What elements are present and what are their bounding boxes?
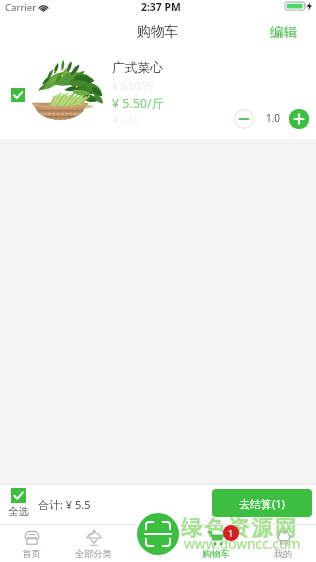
staticText: 广式菜心 xyxy=(112,60,163,76)
button[interactable]: 去结算(1) xyxy=(212,489,312,517)
button[interactable]: Select item xyxy=(11,88,25,102)
staticText: www.downcc.com xyxy=(184,534,301,553)
staticText: 1.0 xyxy=(264,111,282,125)
staticText: 2:37 PM xyxy=(141,0,181,14)
staticText: 购物车 xyxy=(137,23,179,40)
button[interactable]: Decrease quantity xyxy=(234,109,254,129)
staticText: 购物车 xyxy=(202,548,230,560)
button[interactable]: 全部分类 xyxy=(67,529,119,561)
button[interactable]: 购物车 xyxy=(190,529,242,561)
button[interactable]: 首页 xyxy=(5,529,57,561)
staticText: 1 xyxy=(228,527,234,539)
button[interactable]: 编辑 xyxy=(259,21,316,41)
staticText: 全选 xyxy=(8,505,29,518)
staticText: 去结算(1) xyxy=(239,496,285,511)
button[interactable]: Select all xyxy=(8,488,29,518)
staticText: 全部分类 xyxy=(75,548,112,560)
staticText: 编辑 xyxy=(270,24,297,38)
button[interactable]: Increase quantity xyxy=(289,109,309,129)
staticText: 我的 xyxy=(274,548,293,560)
staticText: ¥ 6.60 xyxy=(112,113,141,127)
button[interactable]: Scan xyxy=(137,513,179,555)
staticText: 绿色资源网 xyxy=(180,515,297,541)
button[interactable]: 我的 xyxy=(257,529,309,561)
staticText: Carrier xyxy=(5,1,37,14)
staticText: ¥ 5.50/斤 xyxy=(112,79,154,93)
staticText: 首页 xyxy=(22,548,41,560)
staticText: 合计: ¥ 5.5 xyxy=(38,497,91,512)
staticText: ¥ 5.50/斤 xyxy=(112,95,164,112)
